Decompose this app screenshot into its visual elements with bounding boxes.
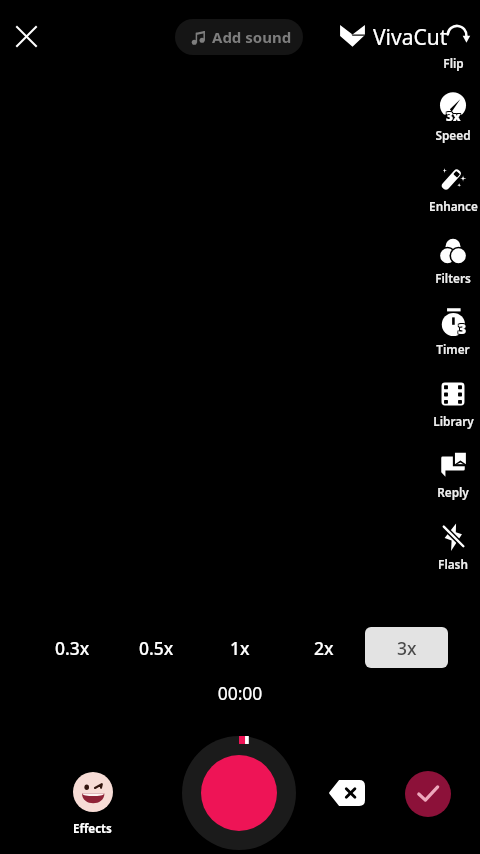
button[interactable]: Delete last clip — [329, 780, 365, 806]
staticText: 3 — [459, 318, 468, 337]
staticText: 3x — [397, 636, 417, 660]
button[interactable]: 0.3x — [31, 627, 114, 668]
button[interactable]: Record — [182, 736, 296, 850]
staticText: Speed — [435, 127, 471, 143]
button[interactable]: Done — [405, 771, 451, 817]
button[interactable]: 1x — [198, 627, 281, 668]
staticText: 3x — [447, 107, 462, 123]
button[interactable]: Effects — [64, 772, 121, 837]
staticText: 3 — [457, 319, 466, 338]
staticText: 3 — [458, 320, 467, 339]
button[interactable]: Reply — [426, 451, 480, 522]
staticText: Add sound — [212, 27, 292, 47]
staticText: Effects — [73, 821, 112, 837]
button[interactable]: Flip — [426, 22, 480, 93]
staticText: 3 — [458, 318, 467, 337]
button[interactable]: Library — [426, 380, 480, 451]
staticText: 3 — [457, 318, 466, 337]
staticText: Library — [433, 413, 474, 429]
staticText: 3x — [445, 108, 460, 124]
button[interactable]: Add sound — [175, 19, 303, 55]
staticText: 2x — [314, 636, 334, 660]
staticText: Flip — [443, 55, 464, 71]
staticText: 0.5x — [139, 636, 174, 660]
button[interactable]: 0.5x — [115, 627, 198, 668]
button[interactable]: 3x — [426, 94, 480, 165]
staticText: 3x — [447, 109, 462, 125]
staticText: VivaCut — [373, 23, 448, 52]
button[interactable]: Filters — [426, 237, 480, 308]
staticText: Enhance — [429, 198, 478, 214]
staticText: 3x — [446, 107, 461, 123]
button[interactable]: 2x — [282, 627, 365, 668]
button[interactable]: 3 — [426, 308, 480, 379]
staticText: Flash — [438, 556, 468, 572]
staticText: 0.3x — [55, 636, 90, 660]
staticText: Reply — [437, 484, 469, 500]
staticText: 3 — [459, 319, 468, 338]
staticText: 1x — [230, 636, 250, 660]
staticText: Timer — [436, 341, 470, 357]
button[interactable]: Close — [8, 18, 44, 54]
staticText: 3 — [457, 320, 466, 339]
staticText: Filters — [435, 270, 471, 286]
staticText: 3x — [445, 109, 460, 125]
staticText: 3x — [445, 107, 460, 123]
staticText: 00:00 — [0, 681, 480, 705]
staticText: 3x — [446, 109, 461, 125]
button[interactable]: Enhance — [426, 165, 480, 236]
staticText: 3 — [459, 320, 468, 339]
button[interactable]: Flash — [426, 523, 480, 594]
staticText: 3x — [447, 108, 462, 124]
staticText: 3 — [458, 319, 467, 338]
staticText: 3x — [446, 108, 461, 124]
button[interactable]: 3x — [365, 627, 448, 668]
